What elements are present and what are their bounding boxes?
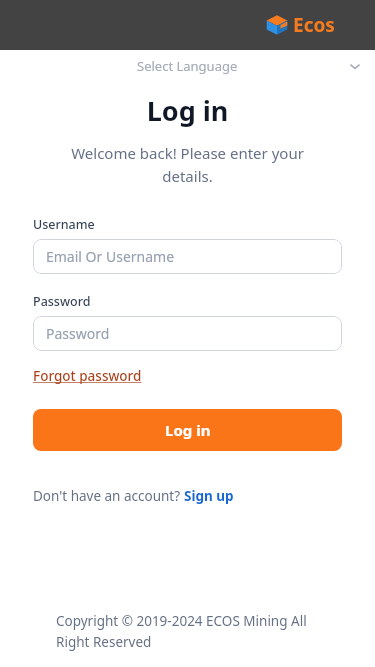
button[interactable]: Password (33, 316, 342, 351)
button[interactable]: Sign up (184, 487, 234, 505)
button[interactable]: Forgot password (33, 367, 142, 385)
staticText: Ecos (293, 12, 335, 38)
staticText: Log in (165, 420, 211, 440)
staticText: Log in (0, 92, 375, 129)
button[interactable]: Ecos (266, 12, 335, 38)
staticText: Password (33, 293, 91, 310)
staticText: Password (46, 324, 110, 343)
staticText: Forgot password (33, 367, 142, 385)
staticText: Email Or Username (46, 247, 175, 266)
staticText: Welcome back! Please enter your details. (46, 143, 329, 186)
staticText: Sign up (184, 487, 234, 505)
staticText: Copyright © 2019-2024 ECOS Mining All Ri… (56, 612, 335, 651)
button[interactable]: Select Language (0, 50, 375, 82)
staticText: Username (33, 216, 95, 233)
staticText: Select Language (137, 57, 238, 75)
button[interactable]: Email Or Username (33, 239, 342, 274)
button[interactable]: Log in (33, 409, 342, 451)
staticText: Don't have an account? (33, 487, 184, 505)
